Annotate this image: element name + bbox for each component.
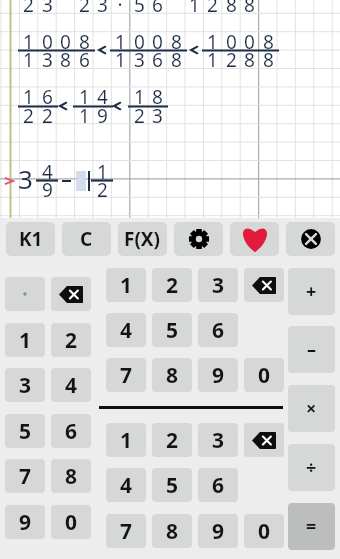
staticText: 4 (65, 371, 78, 400)
button[interactable]: 9 (198, 514, 238, 548)
staticText: 4 (120, 471, 133, 500)
button[interactable]: Clear all (286, 222, 335, 256)
staticText: 2 (166, 426, 179, 455)
button[interactable]: 0 (244, 514, 284, 548)
staticText: 0 (134, 29, 145, 55)
staticText: 7 (120, 517, 133, 546)
staticText: K1 (19, 226, 43, 252)
button[interactable]: F(X) (118, 222, 167, 256)
staticText: 8 (166, 517, 179, 546)
staticText: · (117, 0, 123, 18)
button[interactable]: + (288, 268, 335, 315)
button[interactable]: 1 (106, 268, 146, 302)
staticText: = (306, 514, 317, 539)
staticText: 1 (23, 47, 34, 73)
staticText: 2 (79, 0, 90, 18)
button[interactable]: 0 (51, 505, 91, 539)
staticText: 1 (189, 0, 200, 18)
button[interactable]: ÷ (288, 444, 335, 491)
staticText: 1 (207, 47, 218, 73)
button[interactable]: 4 (106, 313, 146, 347)
button[interactable]: 8 (152, 358, 192, 392)
staticText: 2 (134, 103, 145, 129)
button[interactable]: 6 (198, 468, 238, 502)
staticText: 3 (152, 103, 163, 129)
staticText: 1 (115, 47, 126, 73)
button[interactable]: Settings (174, 222, 223, 256)
staticText: + (306, 279, 317, 304)
button[interactable]: 7 (106, 358, 146, 392)
button[interactable]: 3 (198, 423, 238, 457)
staticText: 9 (212, 517, 225, 546)
staticText: 1 (79, 84, 90, 110)
staticText: 4 (97, 84, 108, 110)
button[interactable]: 2 (51, 323, 91, 357)
staticText: C (80, 226, 93, 252)
button[interactable]: × (288, 385, 335, 432)
staticText: 8 (226, 0, 237, 18)
staticText: 9 (42, 177, 53, 203)
button[interactable]: 1 (5, 323, 45, 357)
staticText: 2 (23, 0, 34, 18)
staticText: 8 (60, 47, 71, 73)
button[interactable]: 5 (152, 313, 192, 347)
button[interactable]: Backspace (244, 268, 284, 302)
staticText: 2 (166, 271, 179, 300)
staticText: 3 (212, 271, 225, 300)
staticText: 6 (152, 47, 163, 73)
button[interactable]: 5 (5, 414, 45, 448)
staticText: 6 (212, 471, 225, 500)
button[interactable]: 4 (106, 468, 146, 502)
button[interactable]: 3 (5, 368, 45, 402)
button[interactable]: 2 (152, 268, 192, 302)
staticText: – (307, 337, 316, 362)
button[interactable]: C (62, 222, 111, 256)
button[interactable]: 7 (106, 514, 146, 548)
staticText: 1 (23, 29, 34, 55)
staticText: 6 (65, 417, 78, 446)
button[interactable]: = (288, 503, 335, 550)
staticText: 1 (79, 103, 90, 129)
staticText: 5 (166, 471, 179, 500)
button[interactable]: Decimal point (5, 277, 45, 311)
button[interactable]: 4 (51, 368, 91, 402)
button[interactable]: – (288, 326, 335, 373)
staticText: 9 (97, 103, 108, 129)
staticText: 0 (65, 508, 78, 537)
staticText: 5 (19, 417, 32, 446)
staticText: 0 (60, 29, 71, 55)
button[interactable]: 6 (198, 313, 238, 347)
staticText: 8 (244, 47, 255, 73)
staticText: 1 (97, 159, 108, 185)
staticText: 2 (207, 0, 218, 18)
button[interactable]: 8 (51, 459, 91, 493)
staticText: 1 (23, 84, 34, 110)
button[interactable]: 9 (198, 358, 238, 392)
staticText: 9 (212, 361, 225, 390)
staticText: 6 (42, 84, 53, 110)
staticText: 3 (97, 0, 108, 18)
button[interactable]: Backspace (51, 277, 91, 311)
button[interactable]: 0 (244, 358, 284, 392)
staticText: 3 (42, 47, 53, 73)
button[interactable]: 8 (152, 514, 192, 548)
staticText: 6 (212, 316, 225, 345)
staticText: 8 (244, 0, 255, 18)
button[interactable]: K1 (6, 222, 55, 256)
button[interactable]: 6 (51, 414, 91, 448)
staticText: 8 (263, 47, 274, 73)
button[interactable]: 2 (152, 423, 192, 457)
button[interactable]: 1 (106, 423, 146, 457)
staticText: 5 (134, 0, 145, 18)
button[interactable]: Favourites (230, 222, 279, 256)
staticText: ÷ (306, 455, 317, 480)
staticText: 1 (120, 271, 133, 300)
button[interactable]: Backspace (244, 423, 284, 457)
button[interactable]: 3 (198, 268, 238, 302)
button[interactable]: 7 (5, 459, 45, 493)
staticText: 1 (207, 29, 218, 55)
staticText: 2 (23, 103, 34, 129)
button[interactable]: 9 (5, 505, 45, 539)
button[interactable]: 5 (152, 468, 192, 502)
staticText: 7 (19, 462, 32, 491)
